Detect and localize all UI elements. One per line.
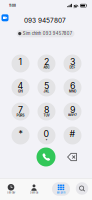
staticText: TUV	[43, 113, 49, 117]
staticText: *	[18, 128, 22, 139]
staticText: ABC	[43, 65, 49, 69]
staticText: 7	[18, 104, 23, 115]
button[interactable]: Danh bạ	[25, 182, 43, 196]
staticText: PQRS	[16, 113, 24, 117]
staticText: 9	[70, 104, 75, 115]
staticText: 0	[43, 128, 49, 139]
staticText: GHI	[18, 89, 23, 93]
button[interactable]: Call	[36, 147, 55, 166]
button[interactable]: 7	[11, 102, 29, 120]
button[interactable]: 8	[37, 102, 55, 120]
button[interactable]: Delete	[63, 148, 81, 166]
staticText: 4	[17, 80, 23, 91]
button[interactable]: Search	[76, 182, 88, 195]
staticText: MNO	[69, 89, 76, 93]
button[interactable]: #	[63, 126, 81, 144]
button[interactable]: 3	[63, 54, 81, 72]
staticText: 11:08	[9, 4, 16, 7]
button[interactable]: 9	[63, 102, 81, 120]
staticText: +	[45, 137, 47, 141]
button[interactable]: Sim chính 093 9457807	[16, 30, 74, 37]
button[interactable]: 4	[11, 78, 29, 96]
button[interactable]: Gần đây	[2, 182, 20, 196]
staticText: 8	[44, 104, 49, 115]
staticText: Sim chính 093 9457807	[23, 31, 72, 36]
button[interactable]: 6	[63, 78, 81, 96]
staticText: #	[69, 128, 75, 139]
staticText: 2	[44, 56, 49, 67]
staticText: 6	[70, 80, 75, 91]
button[interactable]: 2	[37, 54, 55, 72]
staticText: 1	[18, 56, 22, 67]
button[interactable]: 1	[11, 54, 29, 72]
staticText: Gần đây	[7, 191, 15, 194]
staticText: WXYZ	[68, 113, 77, 117]
staticText: DEF	[69, 65, 75, 69]
button[interactable]: *	[11, 126, 29, 144]
staticText: Danh bạ	[30, 191, 38, 194]
button[interactable]: 0	[37, 126, 55, 144]
staticText: Bàn phím	[56, 191, 65, 194]
button[interactable]: 5	[37, 78, 55, 96]
staticText: JKL	[43, 89, 49, 93]
button[interactable]: FaceTime	[1, 14, 8, 21]
staticText: 3	[70, 56, 75, 67]
staticText: 093 9457807	[24, 16, 66, 24]
staticText: 5	[44, 80, 49, 91]
button[interactable]: Bàn phím	[52, 182, 70, 196]
